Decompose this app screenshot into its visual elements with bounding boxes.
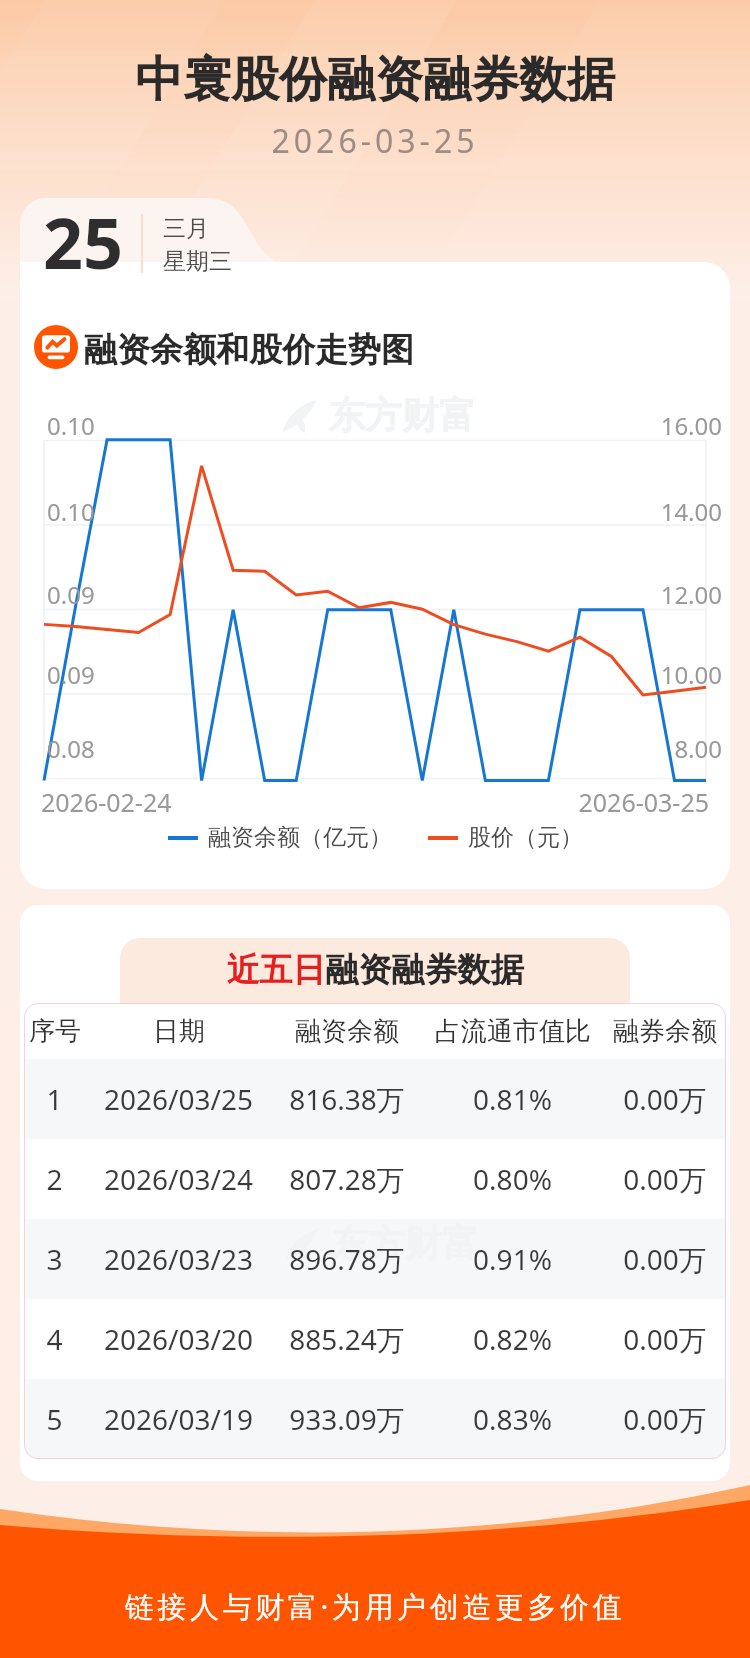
staticText: 2026-02-24 (41, 785, 172, 819)
staticText: 序号 (29, 1015, 81, 1048)
staticText: 0.81% (473, 1080, 552, 1118)
staticText: 东方财富 (328, 392, 476, 439)
other: 走势图 (34, 325, 78, 369)
staticText: 896.78万 (289, 1240, 405, 1278)
staticText: 0.80% (473, 1160, 552, 1198)
staticText: 近五日融资融券数据 (20, 949, 730, 991)
staticText: 东方财富 (331, 1220, 479, 1267)
staticText: 2026-03-25 (20, 785, 709, 819)
staticText: 8.00 (20, 732, 722, 765)
staticText: 5 (46, 1400, 63, 1438)
staticText: 2026-03-25 (0, 119, 750, 163)
staticText: 三月 (163, 214, 209, 243)
staticText: 2026/03/20 (104, 1320, 253, 1358)
staticText: 2026/03/19 (104, 1400, 253, 1438)
staticText: 星期三 (163, 247, 232, 276)
staticText: 0.00万 (623, 1240, 707, 1278)
staticText: 融资余额 (295, 1015, 399, 1048)
staticText: 16.00 (20, 409, 722, 442)
staticText: 0.08 (47, 732, 95, 765)
staticText: 日期 (153, 1015, 205, 1048)
staticText: 807.28万 (289, 1160, 405, 1198)
staticText: 14.00 (20, 495, 722, 528)
staticText: 2026/03/25 (104, 1080, 253, 1118)
staticText: 中寰股份融资融券数据 (0, 50, 750, 110)
staticText: 933.09万 (289, 1400, 405, 1438)
staticText: 885.24万 (289, 1320, 405, 1358)
staticText: 1 (46, 1080, 63, 1118)
staticText: 0.00万 (623, 1320, 707, 1358)
staticText: 2026/03/23 (104, 1240, 253, 1278)
staticText: 3 (46, 1240, 63, 1278)
staticText: 12.00 (20, 578, 722, 611)
staticText: 0.10 (47, 409, 95, 442)
staticText: 融券余额 (613, 1015, 717, 1048)
staticText: 0.00万 (623, 1400, 707, 1438)
staticText: 2026/03/24 (104, 1160, 253, 1198)
staticText: 0.00万 (623, 1080, 707, 1118)
staticText: 2 (46, 1160, 63, 1198)
staticText: 融资余额和股价走势图 (84, 329, 414, 371)
staticText: 占流通市值比 (435, 1015, 591, 1048)
staticText: 融资余额（亿元） (208, 823, 392, 852)
staticText: 0.10 (47, 495, 95, 528)
staticText: 0.91% (473, 1240, 552, 1278)
staticText: 链接人与财富·为用户创造更多价值 (0, 1586, 750, 1626)
staticText: 4 (46, 1320, 63, 1358)
staticText: 25 (43, 194, 124, 289)
staticText: 0.09 (47, 658, 95, 691)
staticText: 0.00万 (623, 1160, 707, 1198)
staticText: 0.83% (473, 1400, 552, 1438)
staticText: 0.82% (473, 1320, 552, 1358)
staticText: 10.00 (20, 658, 722, 691)
staticText: 股价（元） (468, 823, 583, 852)
staticText: 816.38万 (289, 1080, 405, 1118)
staticText: 0.09 (47, 578, 95, 611)
